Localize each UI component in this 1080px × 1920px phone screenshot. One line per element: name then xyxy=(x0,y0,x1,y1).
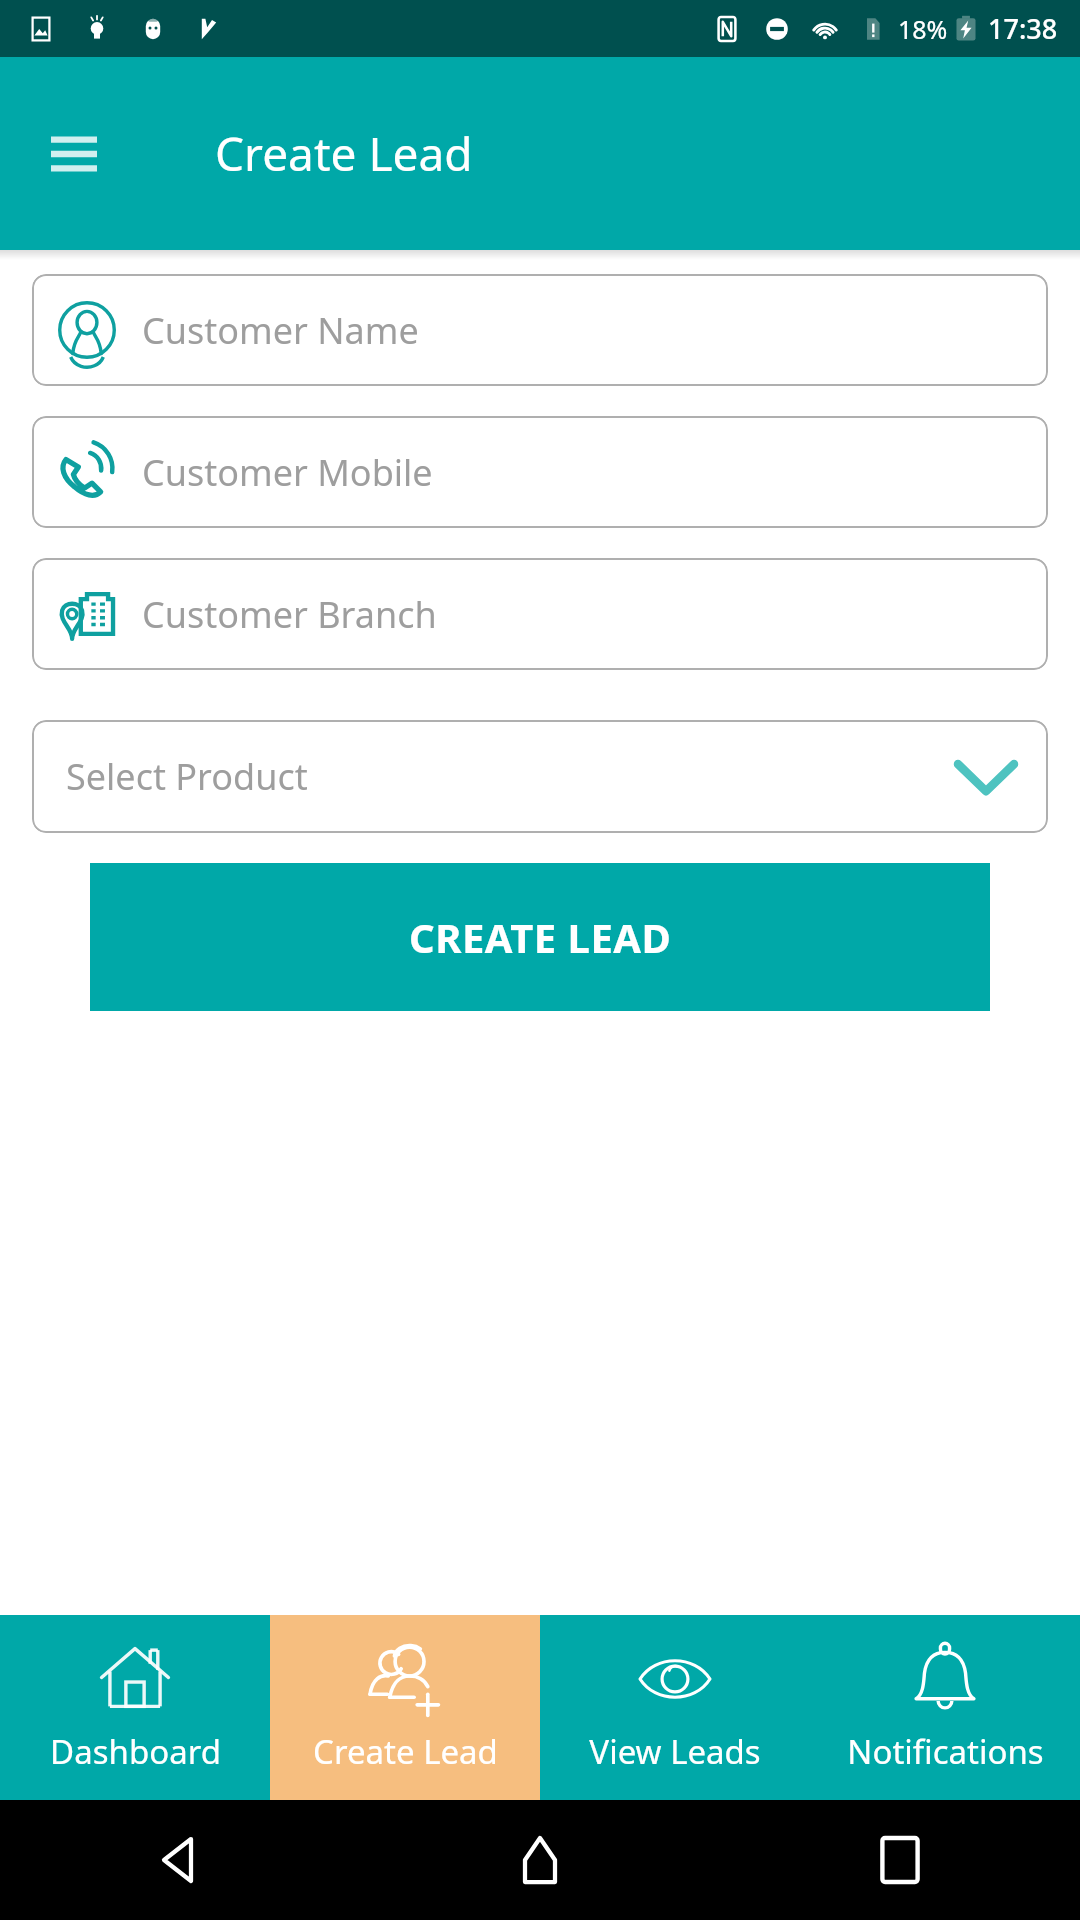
button[interactable]: CREATE LEAD xyxy=(90,863,990,1011)
staticText: Customer Mobile xyxy=(142,448,433,497)
staticText: 17:38 xyxy=(988,10,1058,47)
button[interactable]: Back xyxy=(132,1812,228,1908)
button[interactable]: Dashboard xyxy=(0,1615,270,1800)
button[interactable]: Open navigation menu xyxy=(38,118,110,190)
staticText: Select Product xyxy=(66,752,958,801)
staticText: Customer Branch xyxy=(142,590,437,639)
staticText: View Leads xyxy=(589,1729,761,1774)
button[interactable]: Select Product xyxy=(32,720,1048,833)
staticText: 18% xyxy=(898,12,948,46)
button[interactable]: View Leads xyxy=(540,1615,810,1800)
staticText: Notifications xyxy=(847,1729,1044,1774)
button[interactable]: Notifications xyxy=(810,1615,1080,1800)
button[interactable]: Home xyxy=(492,1812,588,1908)
button[interactable]: Customer Branch xyxy=(32,558,1048,670)
button[interactable]: Customer Name xyxy=(32,274,1048,386)
button[interactable]: Create Lead xyxy=(270,1615,540,1800)
staticText: Customer Name xyxy=(142,306,419,355)
button[interactable]: Recent apps xyxy=(852,1812,948,1908)
button[interactable]: Customer Mobile xyxy=(32,416,1048,528)
staticText: Create Lead xyxy=(313,1729,498,1774)
staticText: Dashboard xyxy=(50,1729,221,1774)
staticText: Create Lead xyxy=(215,122,473,185)
staticText: CREATE LEAD xyxy=(409,910,672,964)
